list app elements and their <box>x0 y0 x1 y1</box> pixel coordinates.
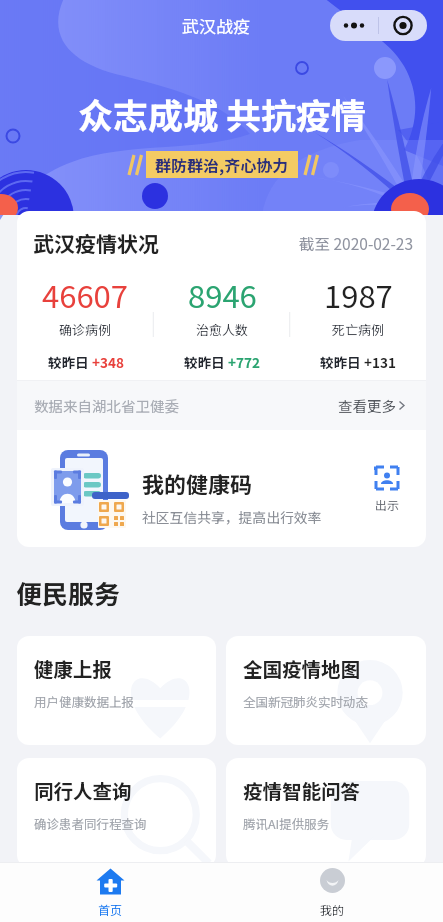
staticText: 武汉疫情状况 <box>33 228 159 258</box>
staticText: 便民服务 <box>16 574 121 612</box>
staticText: 较昨日 <box>320 352 364 372</box>
staticText: 8946 <box>188 272 257 317</box>
staticText: 较昨日 <box>184 352 228 372</box>
staticText: 同行人查询 <box>34 776 132 804</box>
staticText: 社区互信共享，提高出行效率 <box>142 507 322 527</box>
staticText: 腾讯AI提供服务 <box>243 814 330 832</box>
button[interactable]: 健康上报 <box>17 636 216 745</box>
button[interactable]: 疫情智能问答 <box>226 758 426 867</box>
staticText: 治愈人数 <box>196 320 249 339</box>
staticText: 1987 <box>324 272 393 317</box>
staticText: 全国新冠肺炎实时动态 <box>243 692 369 710</box>
staticText: 46607 <box>42 272 129 317</box>
staticText: 较昨日 <box>48 352 92 372</box>
button[interactable]: 数据来自湖北省卫健委 <box>17 381 426 430</box>
staticText: 用户健康数据上报 <box>34 692 135 710</box>
button[interactable]: 我的 <box>221 863 443 922</box>
button[interactable]: 同行人查询 <box>17 758 216 867</box>
button[interactable]: 我的健康码 <box>17 430 426 547</box>
staticText: 死亡病例 <box>332 320 385 339</box>
staticText: 全国疫情地图 <box>243 654 361 682</box>
staticText: +348 <box>92 352 124 372</box>
staticText: +131 <box>364 352 396 372</box>
staticText: 健康上报 <box>34 654 113 682</box>
button[interactable]: Menu <box>330 10 427 41</box>
button[interactable]: 全国疫情地图 <box>226 636 426 745</box>
staticText: 我的健康码 <box>142 467 253 499</box>
staticText: 众志成城 共抗疫情 <box>78 88 366 139</box>
staticText: 疫情智能问答 <box>243 776 361 804</box>
staticText: 查看更多 <box>338 395 396 416</box>
staticText: 群防群治,齐心协力 <box>155 153 289 176</box>
staticText: 确诊患者同行程查询 <box>34 814 147 832</box>
staticText: 数据来自湖北省卫健委 <box>34 395 179 416</box>
button[interactable]: 首页 <box>0 863 221 922</box>
staticText: 我的 <box>320 901 345 918</box>
staticText: +772 <box>228 352 260 372</box>
staticText: 确诊病例 <box>59 320 112 339</box>
staticText: 截至 2020-02-23 <box>299 232 414 254</box>
staticText: 出示 <box>375 496 400 513</box>
staticText: 武汉战疫 <box>182 13 250 38</box>
staticText: 首页 <box>98 901 123 918</box>
